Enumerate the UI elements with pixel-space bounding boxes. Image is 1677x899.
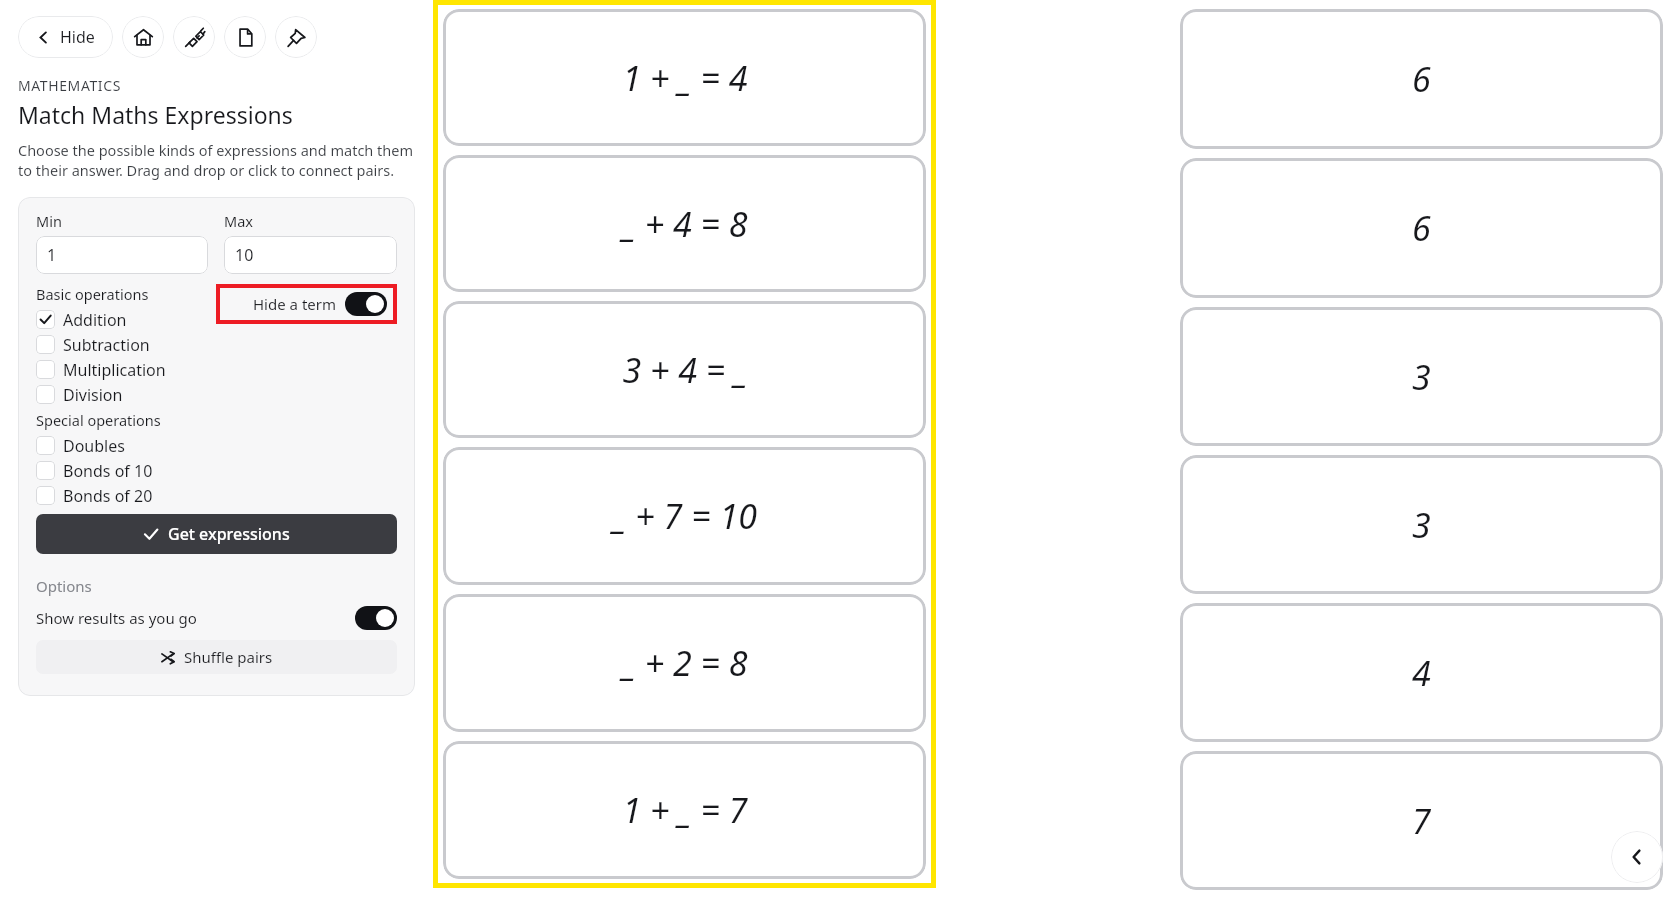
button[interactable]: _ + 2 = 8 (443, 594, 926, 732)
staticText: 3 + 4 = _ (622, 347, 748, 393)
button[interactable]: Doubles (36, 433, 216, 458)
button[interactable]: Hide a term (226, 292, 387, 316)
button[interactable]: 1 + _ = 7 (443, 741, 926, 879)
button[interactable]: Show results as you go (36, 606, 397, 630)
button[interactable]: 4 (1180, 603, 1663, 742)
button[interactable]: Collapse panel (1611, 831, 1663, 883)
button[interactable]: 10 (224, 236, 397, 274)
button[interactable]: 1 + _ = 4 (443, 9, 926, 146)
staticText: Basic operations (36, 284, 149, 304)
staticText: _ + 2 = 8 (622, 640, 748, 686)
staticText: Addition (63, 309, 127, 331)
staticText: 10 (235, 244, 254, 266)
staticText: 6 (1412, 56, 1431, 102)
staticText: 6 (1412, 205, 1431, 251)
staticText: Division (63, 384, 123, 406)
staticText: 1 (47, 244, 57, 266)
button[interactable]: Bonds of 20 (36, 483, 216, 508)
staticText: Shuffle pairs (184, 647, 273, 667)
staticText: 3 (1412, 502, 1431, 548)
staticText: Min (36, 211, 62, 231)
button[interactable]: 6 (1180, 9, 1663, 149)
button[interactable]: _ + 4 = 8 (443, 155, 926, 292)
staticText: Hide (60, 26, 95, 48)
staticText: Multiplication (63, 359, 166, 381)
staticText: Choose the possible kinds of expressions… (18, 140, 415, 181)
button[interactable]: Addition (36, 307, 216, 332)
button[interactable]: 3 + 4 = _ (443, 301, 926, 438)
staticText: 1 + _ = 4 (622, 55, 748, 101)
button[interactable]: Home (122, 16, 164, 58)
staticText: MATHEMATICS (18, 76, 121, 95)
button[interactable]: 6 (1180, 158, 1663, 298)
staticText: Options (36, 576, 92, 596)
staticText: _ + 7 = 10 (613, 493, 757, 539)
staticText: Max (224, 211, 253, 231)
staticText: 7 (1412, 798, 1431, 844)
button[interactable]: Connect (173, 16, 215, 58)
staticText: Special operations (36, 410, 161, 430)
button[interactable]: Subtraction (36, 332, 216, 357)
button[interactable]: 7 (1180, 751, 1663, 890)
staticText: 1 + _ = 7 (622, 787, 748, 833)
staticText: Doubles (63, 435, 125, 457)
button[interactable] (355, 606, 397, 630)
staticText: 4 (1412, 650, 1431, 696)
button[interactable]: Shuffle pairs (36, 640, 397, 674)
staticText: Subtraction (63, 334, 150, 356)
staticText: Get expressions (168, 523, 290, 545)
button[interactable]: 3 (1180, 455, 1663, 594)
staticText: Bonds of 20 (63, 485, 153, 507)
button[interactable]: Multiplication (36, 357, 216, 382)
button[interactable]: Get expressions (36, 514, 397, 554)
button[interactable]: 1 (36, 236, 208, 274)
button[interactable]: Hide (18, 16, 113, 58)
button[interactable] (345, 292, 387, 316)
staticText: Hide a term (253, 294, 336, 314)
staticText: 3 (1412, 354, 1431, 400)
button[interactable]: Document (224, 16, 266, 58)
staticText: Show results as you go (36, 608, 197, 628)
button[interactable]: Pin (275, 16, 317, 58)
staticText: Bonds of 10 (63, 460, 153, 482)
button[interactable]: 3 (1180, 307, 1663, 446)
button[interactable]: Division (36, 382, 216, 407)
staticText: _ + 4 = 8 (622, 201, 748, 247)
staticText: Match Maths Expressions (18, 99, 293, 130)
button[interactable]: Bonds of 10 (36, 458, 216, 483)
button[interactable]: _ + 7 = 10 (443, 447, 926, 585)
